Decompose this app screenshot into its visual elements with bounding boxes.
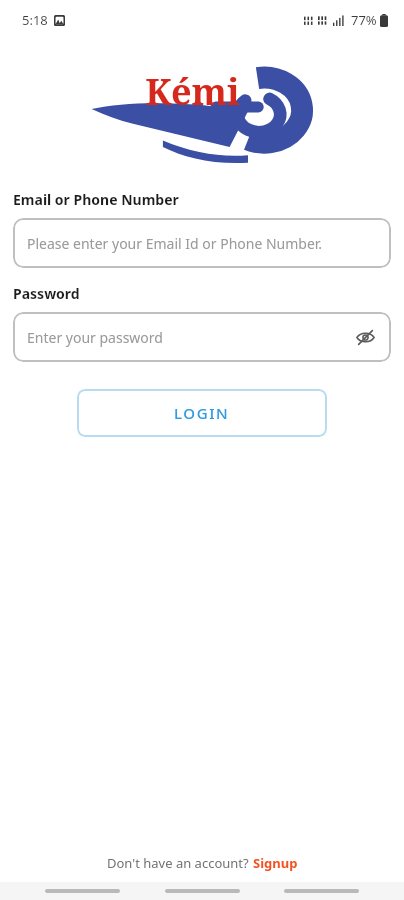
button[interactable]: Enter your password [13, 312, 391, 362]
button[interactable]: Signup [253, 854, 298, 872]
button[interactable]: Please enter your Email Id or Phone Numb… [13, 218, 391, 268]
staticText: Please enter your Email Id or Phone Numb… [27, 234, 323, 253]
staticText: Enter your password [27, 328, 163, 347]
staticText: Kémi [145, 67, 240, 116]
button[interactable]: Navigation button [165, 884, 240, 898]
button[interactable]: Navigation button [45, 884, 120, 898]
button[interactable]: Navigation button [284, 884, 359, 898]
staticText: Email or Phone Number [13, 190, 179, 209]
staticText: 77% [351, 11, 377, 29]
staticText: LOGIN [174, 403, 230, 423]
button[interactable]: LOGIN [77, 389, 327, 437]
button[interactable]: Show password [351, 323, 379, 351]
staticText: Signup [253, 854, 298, 872]
staticText: 5:18 [22, 11, 48, 29]
staticText: Password [13, 284, 80, 303]
staticText: Don't have an account? [107, 854, 253, 872]
